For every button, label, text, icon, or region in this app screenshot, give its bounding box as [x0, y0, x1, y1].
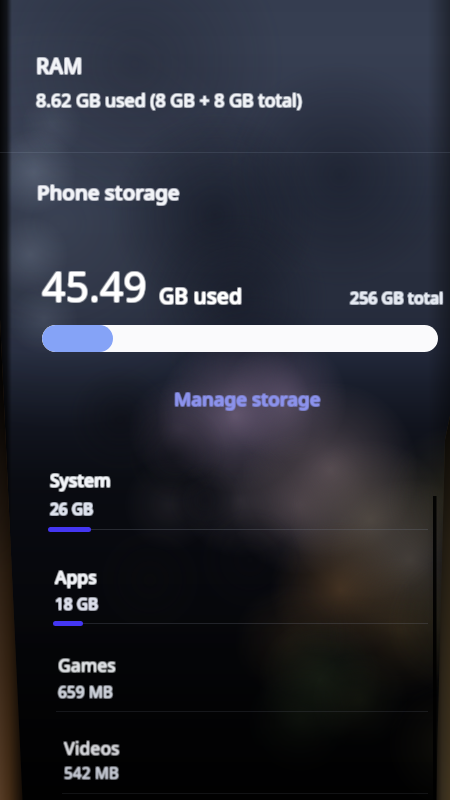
- staticText: 18 GB: [56, 594, 100, 615]
- staticText: Games: [57, 653, 115, 677]
- staticText: 26 GB: [49, 497, 93, 518]
- staticText: 26 GB: [49, 498, 93, 519]
- staticText: 18 GB: [54, 593, 98, 614]
- staticText: 542 MB: [64, 761, 119, 782]
- staticText: 256 GB total: [350, 286, 444, 308]
- staticText: 8.62 GB used (8 GB + 8 GB total): [37, 87, 303, 111]
- staticText: Apps: [56, 565, 98, 589]
- staticText: 45.49: [42, 258, 147, 314]
- staticText: System: [51, 469, 112, 493]
- staticText: Apps: [54, 564, 96, 588]
- staticText: Apps: [56, 564, 98, 588]
- staticText: Videos: [64, 736, 120, 760]
- staticText: 26 GB: [50, 499, 94, 520]
- staticText: RAM: [37, 51, 84, 80]
- staticText: Apps: [54, 565, 96, 589]
- staticText: 26 GB: [50, 498, 94, 519]
- staticText: 256 GB total: [350, 288, 444, 310]
- staticText: Manage storage: [175, 385, 322, 411]
- staticText: Apps: [56, 566, 98, 590]
- staticText: Phone storage: [36, 177, 179, 205]
- button[interactable]: [0, 551, 450, 639]
- staticText: Videos: [65, 735, 121, 759]
- staticText: Videos: [65, 737, 121, 761]
- staticText: GB used: [158, 282, 241, 311]
- staticText: Games: [59, 654, 117, 678]
- staticText: Manage storage: [173, 387, 320, 413]
- staticText: Manage storage: [175, 386, 322, 412]
- staticText: Videos: [63, 735, 119, 759]
- staticText: Phone storage: [38, 177, 181, 205]
- staticText: Games: [58, 652, 116, 676]
- staticText: 26 GB: [51, 498, 95, 519]
- staticText: 542 MB: [63, 762, 118, 783]
- staticText: 8.62 GB used (8 GB + 8 GB total): [36, 87, 302, 111]
- staticText: 256 GB total: [351, 287, 445, 309]
- staticText: 542 MB: [65, 763, 120, 784]
- staticText: GB used: [160, 282, 243, 311]
- staticText: Games: [57, 652, 115, 676]
- staticText: System: [49, 469, 110, 493]
- staticText: 45.49: [42, 257, 147, 313]
- staticText: Phone storage: [37, 177, 180, 205]
- button[interactable]: Manage storage: [0, 386, 450, 412]
- staticText: 8.62 GB used (8 GB + 8 GB total): [36, 88, 302, 112]
- staticText: 45.49: [43, 257, 148, 313]
- staticText: Games: [58, 653, 116, 677]
- staticText: GB used: [160, 281, 243, 310]
- staticText: Apps: [55, 566, 97, 590]
- staticText: GB used: [160, 283, 243, 312]
- staticText: GB used: [159, 281, 242, 310]
- staticText: Phone storage: [37, 178, 180, 206]
- staticText: GB used: [158, 283, 241, 312]
- staticText: Manage storage: [174, 387, 321, 413]
- staticText: 542 MB: [64, 762, 119, 783]
- staticText: 45.49: [42, 259, 147, 315]
- staticText: 8.62 GB used (8 GB + 8 GB total): [35, 87, 301, 111]
- staticText: Phone storage: [38, 179, 181, 207]
- staticText: 18 GB: [54, 592, 98, 613]
- staticText: 256 GB total: [349, 287, 443, 309]
- staticText: Phone storage: [37, 179, 180, 207]
- staticText: 45.49: [41, 259, 146, 315]
- staticText: RAM: [37, 53, 84, 82]
- staticText: Phone storage: [36, 179, 179, 207]
- staticText: GB used: [159, 282, 242, 311]
- staticText: 26 GB: [49, 499, 93, 520]
- button[interactable]: [0, 454, 450, 542]
- staticText: 26 GB: [51, 499, 95, 520]
- staticText: RAM: [37, 52, 84, 81]
- staticText: Manage storage: [175, 387, 322, 413]
- staticText: Games: [59, 652, 117, 676]
- staticText: 8.62 GB used (8 GB + 8 GB total): [37, 88, 303, 112]
- staticText: System: [50, 468, 111, 492]
- staticText: System: [50, 469, 111, 493]
- staticText: 256 GB total: [351, 286, 445, 308]
- staticText: 18 GB: [56, 593, 100, 614]
- staticText: Manage storage: [174, 385, 321, 411]
- staticText: 18 GB: [56, 592, 100, 613]
- button[interactable]: [0, 639, 450, 727]
- staticText: Apps: [54, 566, 96, 590]
- button[interactable]: [42, 325, 438, 352]
- staticText: 8.62 GB used (8 GB + 8 GB total): [36, 89, 302, 113]
- staticText: 659 MB: [59, 680, 114, 701]
- staticText: 26 GB: [50, 497, 94, 518]
- staticText: Videos: [65, 736, 121, 760]
- staticText: 659 MB: [59, 681, 114, 702]
- staticText: RAM: [35, 51, 82, 80]
- staticText: 256 GB total: [350, 287, 444, 309]
- staticText: System: [51, 468, 112, 492]
- staticText: 45.49: [41, 258, 146, 314]
- button[interactable]: [0, 722, 450, 800]
- staticText: 18 GB: [55, 592, 99, 613]
- staticText: 256 GB total: [349, 288, 443, 310]
- button[interactable]: RAM: [0, 50, 450, 118]
- staticText: 45.49: [43, 258, 148, 314]
- staticText: 542 MB: [65, 762, 120, 783]
- staticText: 659 MB: [58, 682, 113, 703]
- staticText: Phone storage: [36, 178, 179, 206]
- staticText: System: [51, 467, 112, 491]
- staticText: System: [49, 467, 110, 491]
- staticText: 659 MB: [58, 681, 113, 702]
